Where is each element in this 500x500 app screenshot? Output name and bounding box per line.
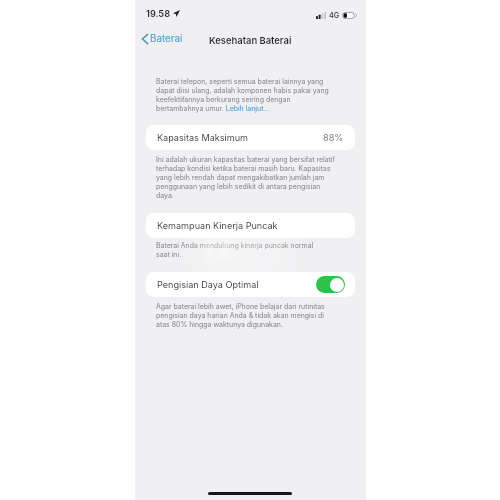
button[interactable]: Baterai (135, 30, 189, 48)
staticText: Baterai Anda mendukung kinerja puncak no… (156, 241, 314, 259)
staticText: Pengisian Daya Optimal (157, 279, 259, 290)
button[interactable]: Kapasitas Maksimum (146, 125, 355, 150)
staticText: 88% (323, 132, 344, 143)
staticText: Kesehatan Baterai (209, 35, 292, 46)
button[interactable]: Pengisian Daya Optimal (316, 276, 345, 293)
staticText: Baterai telepon, seperti semua baterai l… (156, 77, 329, 113)
button[interactable]: Kemampuan Kinerja Puncak (146, 213, 355, 238)
staticText: 19.58 (146, 8, 171, 19)
staticText: Kapasitas Maksimum (157, 132, 249, 143)
staticText: Ini adalah ukuran kapasitas baterai yang… (156, 155, 336, 200)
staticText: Baterai (150, 33, 183, 45)
staticText: 4G (329, 11, 340, 20)
staticText: Kemampuan Kinerja Puncak (157, 220, 278, 231)
button[interactable]: Pengisian Daya Optimal (146, 272, 355, 297)
staticText: Agar baterai lebih awet, iPhone belajar … (156, 302, 325, 329)
